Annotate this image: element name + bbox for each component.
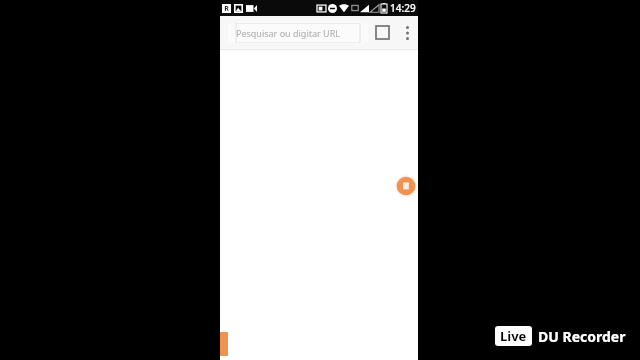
button[interactable]: Tabs [368, 16, 396, 49]
staticText: R [224, 4, 229, 13]
staticText: Pesquisar ou digitar URL [236, 27, 340, 39]
staticText: 14:29 [390, 1, 416, 15]
staticText: DU Recorder [538, 327, 626, 346]
button[interactable]: Recorder bubble [394, 174, 418, 198]
button[interactable]: More options [396, 16, 418, 49]
button[interactable]: Pesquisar ou digitar URL [228, 23, 368, 43]
staticText: Live [500, 327, 527, 345]
